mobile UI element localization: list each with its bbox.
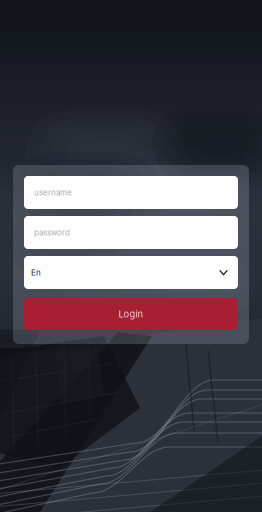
button[interactable]: password <box>24 216 238 249</box>
button[interactable]: Login <box>24 298 238 330</box>
staticText: password <box>34 228 70 237</box>
staticText: username <box>34 188 72 197</box>
button[interactable]: username <box>24 176 238 209</box>
button[interactable]: En <box>24 256 238 289</box>
staticText: Login <box>118 308 143 320</box>
staticText: En <box>31 268 41 277</box>
